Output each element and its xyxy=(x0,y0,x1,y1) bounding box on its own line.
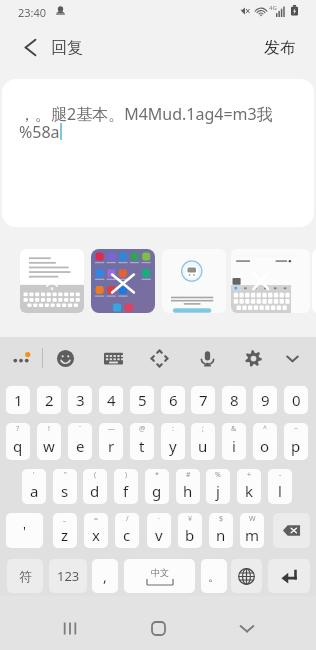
button[interactable]: Screenshot xyxy=(20,249,84,313)
staticText: ? xyxy=(16,424,20,434)
staticText: u xyxy=(198,436,208,456)
staticText: ¥ xyxy=(188,514,193,524)
staticText: x xyxy=(92,525,100,545)
button[interactable]: 2 xyxy=(37,386,61,414)
button[interactable]: 4 xyxy=(99,386,123,414)
button[interactable]: * xyxy=(145,469,169,504)
staticText: 回复 xyxy=(51,38,83,58)
staticText: b xyxy=(185,525,195,545)
staticText: t xyxy=(139,436,145,456)
button[interactable]: 9 xyxy=(253,386,277,414)
button[interactable]: 。 xyxy=(201,559,227,593)
button[interactable]: + xyxy=(237,469,261,504)
button[interactable]: ; xyxy=(191,423,215,460)
button[interactable]: & xyxy=(222,423,246,460)
button[interactable]: , xyxy=(92,559,118,593)
button[interactable]: Home xyxy=(138,608,178,648)
button[interactable]: 8 xyxy=(222,386,246,414)
button[interactable]: Change language xyxy=(231,559,262,593)
staticText: 1 xyxy=(14,390,23,410)
button[interactable]: 符 xyxy=(7,559,43,593)
button[interactable]: 0 xyxy=(284,386,308,414)
button[interactable]: % xyxy=(206,469,230,504)
button[interactable]: Voice input xyxy=(194,345,221,372)
button[interactable]: ( xyxy=(83,469,107,504)
button[interactable]: ^ xyxy=(253,423,277,460)
button[interactable]: ` xyxy=(68,423,92,460)
button[interactable]: Enter xyxy=(268,559,310,593)
button[interactable]: — xyxy=(99,423,123,460)
button[interactable]: Dialog screenshot xyxy=(162,249,226,313)
button[interactable]: : xyxy=(161,423,185,460)
button[interactable]: ? xyxy=(6,423,30,460)
staticText: 4G xyxy=(269,4,277,12)
button[interactable]: Keyboard xyxy=(100,345,127,372)
staticText: W xyxy=(249,514,256,524)
staticText: ，。腿2基本。M4Mud.1ag4=m3我 xyxy=(19,103,273,125)
staticText: l xyxy=(278,481,282,501)
staticText: 。 xyxy=(208,569,220,584)
button[interactable]: Settings xyxy=(240,345,267,372)
button[interactable]: - xyxy=(268,469,292,504)
button[interactable]: · xyxy=(147,513,171,548)
staticText: ; xyxy=(202,424,204,434)
button[interactable]: ) xyxy=(114,469,138,504)
staticText: 8 xyxy=(230,390,239,410)
staticText: k xyxy=(245,481,254,501)
button[interactable]: $ xyxy=(209,513,233,548)
button[interactable]: 1 xyxy=(6,386,30,414)
staticText: 23:40 xyxy=(18,5,47,20)
staticText: : xyxy=(172,424,174,434)
button[interactable]: " xyxy=(53,469,77,504)
button[interactable]: ，。腿2基本。M4Mud.1ag4=m3我 xyxy=(2,79,314,227)
staticText: 7 xyxy=(199,390,208,410)
button[interactable]: ~ xyxy=(284,423,308,460)
staticText: w xyxy=(43,436,55,456)
staticText: ` xyxy=(79,424,81,434)
staticText: 4 xyxy=(107,390,116,410)
staticText: f xyxy=(123,481,129,501)
button[interactable]: 中文 xyxy=(124,559,195,593)
button[interactable]: ¥ xyxy=(178,513,202,548)
staticText: , xyxy=(103,567,107,586)
button[interactable]: More xyxy=(8,345,34,371)
staticText: 5 xyxy=(138,390,147,410)
button[interactable]: Move cursor xyxy=(146,345,173,372)
staticText: * xyxy=(155,470,159,480)
button[interactable]: W xyxy=(240,513,264,548)
button[interactable]: ! xyxy=(37,423,61,460)
button[interactable]: # xyxy=(176,469,200,504)
button[interactable]: Back xyxy=(227,608,267,648)
button[interactable]: Backspace xyxy=(273,513,310,548)
staticText: / xyxy=(126,514,129,524)
button[interactable]: 回复 xyxy=(14,28,95,67)
staticText: ' xyxy=(23,522,26,540)
button[interactable]: _ xyxy=(53,513,77,548)
button[interactable]: Home screen screenshot xyxy=(91,249,155,313)
button[interactable]: 123 xyxy=(49,559,87,593)
staticText: z xyxy=(61,525,69,545)
button[interactable]: ' xyxy=(6,513,43,548)
staticText: i xyxy=(232,436,236,456)
button[interactable]: @ xyxy=(130,423,154,460)
button[interactable]: ' xyxy=(22,469,46,504)
button[interactable]: 3 xyxy=(68,386,92,414)
staticText: ' xyxy=(33,470,35,480)
button[interactable]: / xyxy=(115,513,139,548)
staticText: 6 xyxy=(169,390,178,410)
staticText: 123 xyxy=(57,567,80,585)
button[interactable]: Keyboard screenshot xyxy=(231,249,310,313)
staticText: s xyxy=(61,481,69,501)
button[interactable]: 6 xyxy=(161,386,185,414)
button[interactable]: 发布 xyxy=(252,28,308,67)
button[interactable]: Emoji xyxy=(52,345,79,372)
button[interactable]: 7 xyxy=(191,386,215,414)
button[interactable]: Collapse keyboard xyxy=(279,345,306,372)
button[interactable]: = xyxy=(84,513,108,548)
button[interactable]: Recents xyxy=(50,608,90,648)
button[interactable]: 5 xyxy=(130,386,154,414)
staticText: 发布 xyxy=(264,38,296,58)
staticText: · xyxy=(158,514,160,524)
staticText: n xyxy=(216,525,226,545)
